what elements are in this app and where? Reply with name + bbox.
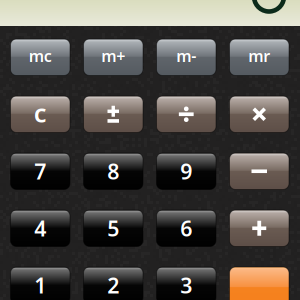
button[interactable]: Clear <box>10 96 70 132</box>
staticText: m+ <box>101 45 125 66</box>
button[interactable]: 7 <box>10 153 70 189</box>
staticText: 1 <box>34 271 46 299</box>
button[interactable]: 8 <box>83 153 143 189</box>
button[interactable]: Divide <box>156 96 216 132</box>
button[interactable]: mr <box>229 39 289 75</box>
staticText: 7 <box>34 157 46 185</box>
staticText: 3 <box>180 271 192 299</box>
staticText: 8 <box>107 157 119 185</box>
button[interactable]: 3 <box>156 267 216 300</box>
staticText: 5 <box>107 214 119 242</box>
button[interactable]: Plus minus <box>83 96 143 132</box>
button[interactable]: Multiply <box>229 96 289 132</box>
staticText: m- <box>176 45 196 66</box>
button[interactable]: m+ <box>83 39 143 75</box>
button[interactable]: 5 <box>83 210 143 246</box>
button[interactable]: Equals <box>229 267 289 300</box>
staticText: 6 <box>180 214 192 242</box>
staticText: mr <box>248 45 270 66</box>
button[interactable]: 2 <box>83 267 143 300</box>
button[interactable]: m- <box>156 39 216 75</box>
staticText: 2 <box>107 271 119 299</box>
button[interactable]: 1 <box>10 267 70 300</box>
staticText: c <box>34 96 47 129</box>
button[interactable]: Plus <box>229 210 289 246</box>
staticText: mc <box>29 45 52 66</box>
button[interactable]: Minus <box>229 153 289 189</box>
button[interactable]: mc <box>10 39 70 75</box>
button[interactable]: 4 <box>10 210 70 246</box>
staticText: 9 <box>180 157 192 185</box>
button[interactable]: 6 <box>156 210 216 246</box>
button[interactable]: 9 <box>156 153 216 189</box>
staticText: 4 <box>34 214 46 242</box>
